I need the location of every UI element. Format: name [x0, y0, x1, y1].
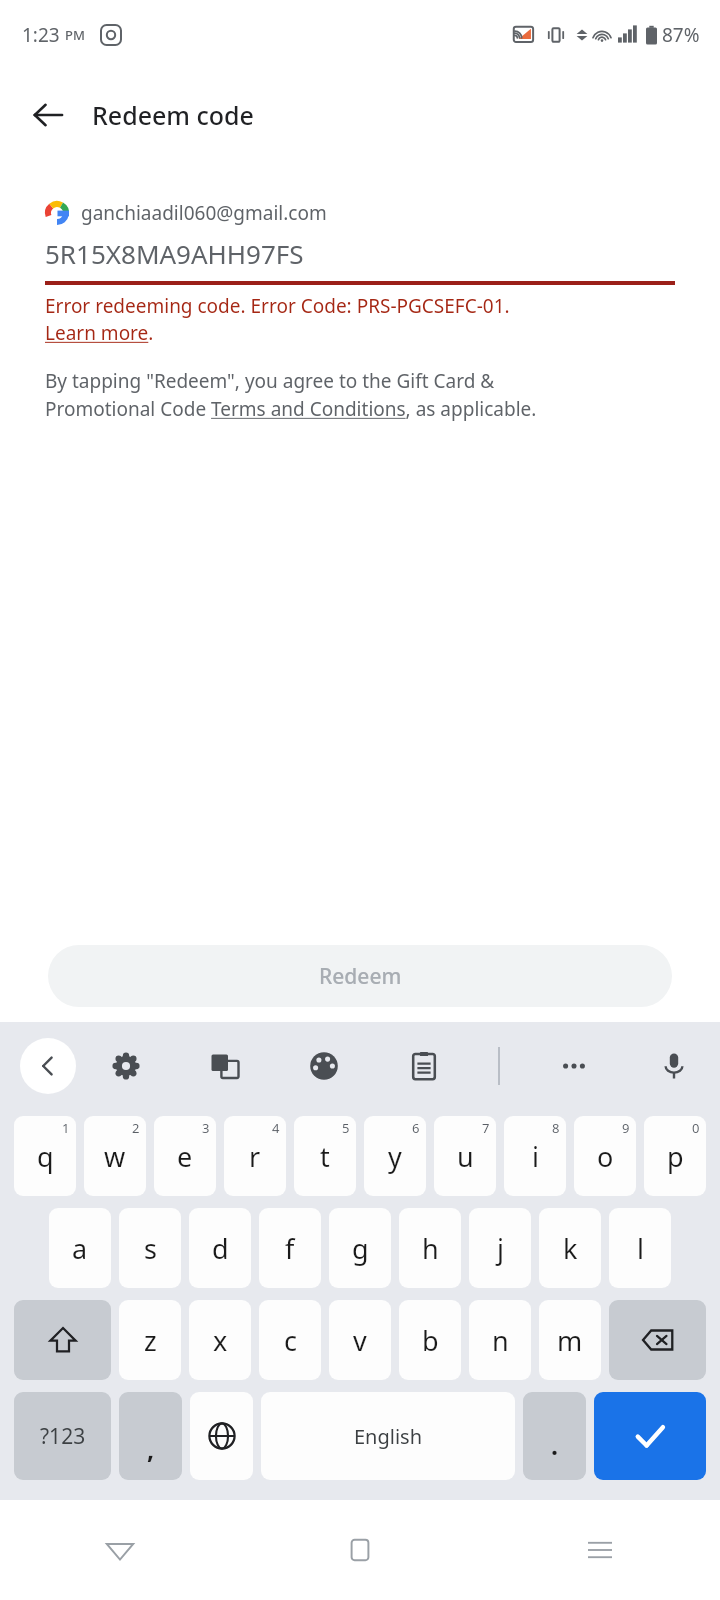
button[interactable]: m: [539, 1300, 601, 1380]
button[interactable]: t: [294, 1116, 356, 1196]
button[interactable]: Comma: [119, 1392, 182, 1480]
staticText: z: [144, 1322, 157, 1359]
button[interactable]: Shift: [14, 1300, 111, 1380]
button[interactable]: Period: [523, 1392, 586, 1480]
staticText: r: [249, 1138, 261, 1175]
button[interactable]: c: [259, 1300, 321, 1380]
button[interactable]: i: [504, 1116, 566, 1196]
staticText: Redeem code: [92, 98, 254, 132]
staticText: 9: [622, 1119, 630, 1137]
button[interactable]: Redeem: [48, 945, 672, 1007]
button[interactable]: Themes: [298, 1040, 350, 1092]
button[interactable]: l: [609, 1208, 671, 1288]
button[interactable]: Recents: [480, 1500, 720, 1600]
button[interactable]: Back: [0, 1500, 240, 1600]
staticText: c: [284, 1322, 297, 1359]
staticText: f: [285, 1230, 295, 1267]
staticText: 1:23: [22, 22, 60, 48]
button[interactable]: Clipboard: [398, 1040, 450, 1092]
button[interactable]: ?123: [14, 1392, 111, 1480]
button[interactable]: n: [469, 1300, 531, 1380]
button[interactable]: g: [329, 1208, 391, 1288]
staticText: m: [557, 1322, 583, 1359]
staticText: b: [422, 1322, 439, 1359]
staticText: 6: [412, 1119, 420, 1137]
staticText: n: [492, 1322, 509, 1359]
staticText: 2: [132, 1119, 140, 1137]
button[interactable]: More options: [548, 1040, 600, 1092]
staticText: h: [422, 1230, 439, 1267]
staticText: o: [597, 1138, 614, 1175]
button[interactable]: o: [574, 1116, 636, 1196]
button[interactable]: r: [224, 1116, 286, 1196]
button[interactable]: b: [399, 1300, 461, 1380]
button[interactable]: x: [189, 1300, 251, 1380]
button[interactable]: z: [119, 1300, 181, 1380]
button[interactable]: v: [329, 1300, 391, 1380]
staticText: 3: [202, 1119, 210, 1137]
button[interactable]: Enter: [594, 1392, 706, 1480]
button[interactable]: w: [84, 1116, 146, 1196]
button[interactable]: Change language: [190, 1392, 253, 1480]
staticText: PM: [65, 26, 85, 44]
staticText: d: [212, 1230, 229, 1267]
staticText: l: [637, 1230, 644, 1267]
staticText: By tapping "Redeem", you agree to the Gi…: [45, 368, 575, 422]
button[interactable]: e: [154, 1116, 216, 1196]
staticText: p: [667, 1138, 684, 1175]
staticText: Redeem: [319, 962, 402, 991]
staticText: 87%: [662, 22, 700, 48]
button[interactable]: s: [119, 1208, 181, 1288]
staticText: 0: [692, 1119, 700, 1137]
staticText: u: [457, 1138, 474, 1175]
staticText: 4: [272, 1119, 280, 1137]
button[interactable]: Home: [240, 1500, 480, 1600]
button[interactable]: j: [469, 1208, 531, 1288]
button[interactable]: Voice input: [648, 1040, 700, 1092]
button[interactable]: y: [364, 1116, 426, 1196]
button[interactable]: Back: [22, 89, 74, 141]
button[interactable]: q: [14, 1116, 76, 1196]
button[interactable]: Backspace: [609, 1300, 706, 1380]
staticText: e: [177, 1138, 193, 1175]
staticText: ganchiaadil060@gmail.com: [81, 200, 327, 226]
button[interactable]: a: [49, 1208, 111, 1288]
staticText: English: [354, 1423, 423, 1450]
staticText: g: [352, 1230, 369, 1267]
button[interactable]: d: [189, 1208, 251, 1288]
button[interactable]: 5R15X8MA9AHH97FS: [45, 236, 675, 285]
staticText: s: [144, 1230, 157, 1267]
staticText: Error redeeming code. Error Code: PRS-PG…: [45, 293, 510, 346]
staticText: ?123: [40, 1422, 86, 1451]
staticText: ,: [147, 1432, 155, 1466]
staticText: 5: [342, 1119, 350, 1137]
staticText: t: [320, 1138, 330, 1175]
staticText: w: [104, 1138, 126, 1175]
staticText: a: [72, 1230, 88, 1267]
staticText: j: [497, 1230, 504, 1267]
button[interactable]: English: [261, 1392, 515, 1480]
button[interactable]: Expand toolbar: [20, 1038, 76, 1094]
button[interactable]: h: [399, 1208, 461, 1288]
staticText: y: [388, 1138, 402, 1175]
button[interactable]: k: [539, 1208, 601, 1288]
button[interactable]: Translate: [199, 1040, 251, 1092]
staticText: .: [551, 1428, 559, 1462]
staticText: 1: [62, 1119, 70, 1137]
button[interactable]: f: [259, 1208, 321, 1288]
staticText: v: [353, 1322, 367, 1359]
staticText: 8: [552, 1119, 560, 1137]
button[interactable]: p: [644, 1116, 706, 1196]
staticText: k: [563, 1230, 578, 1267]
staticText: 7: [482, 1119, 490, 1137]
staticText: 5R15X8MA9AHH97FS: [45, 236, 304, 271]
button[interactable]: u: [434, 1116, 496, 1196]
staticText: q: [37, 1138, 54, 1175]
staticText: x: [213, 1322, 228, 1359]
button[interactable]: Settings: [100, 1040, 152, 1092]
staticText: i: [532, 1138, 539, 1175]
